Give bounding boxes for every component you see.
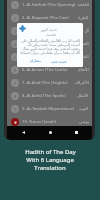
- staticText: الأنعام: [78, 67, 89, 72]
- staticText: الأنفال: [77, 93, 89, 98]
- staticText: الحديث: [46, 33, 56, 37]
- staticText: 10. Yunus (Jonah): [22, 119, 57, 125]
- staticText: المائدة: [77, 54, 89, 59]
- staticText: الفاتحة: [77, 2, 89, 7]
- staticText: البقرة: [78, 15, 89, 20]
- staticText: الأعراف: [75, 80, 89, 85]
- staticText: Hadith of The Day: [25, 148, 76, 156]
- staticText: 9. At-Tawbah (Repentance): [22, 106, 75, 112]
- button[interactable]: 4: [7, 37, 92, 50]
- staticText: حديث جديد: [51, 59, 67, 64]
- staticText: 6: [14, 68, 17, 73]
- staticText: Translation: [34, 164, 66, 172]
- button[interactable]: 7: [7, 76, 92, 89]
- staticText: مشاركة: [30, 59, 41, 63]
- staticText: 1: [14, 3, 17, 8]
- button[interactable]: Recent apps: [66, 126, 86, 140]
- staticText: حديث اليوم: [41, 27, 57, 32]
- button[interactable]: Back: [13, 126, 33, 140]
- staticText: 3: [14, 29, 17, 34]
- staticText: 5. Al-Ma'idah (The Table): [22, 54, 70, 60]
- button[interactable]: Home: [40, 126, 60, 140]
- staticText: 4: [14, 42, 17, 47]
- staticText: الحمد لله رب العالمين والصلاة والسلام عل…: [20, 38, 80, 54]
- button[interactable]: 5: [7, 50, 92, 63]
- staticText: With 6 Language: [26, 156, 74, 164]
- button[interactable]: 9: [7, 102, 92, 115]
- staticText: 4. An-Nisa (The Women): [22, 41, 70, 47]
- button[interactable]: 10. Yunus (Jonah): [7, 115, 92, 128]
- staticText: 6. Al-An'am (The Cattle): [22, 67, 68, 73]
- button[interactable]: 8: [7, 89, 92, 102]
- button[interactable]: مشاركة: [29, 58, 42, 64]
- staticText: 7. Al-A'raf (The Heights): [22, 80, 68, 86]
- staticText: آل عمران: [72, 28, 89, 34]
- staticText: 3. Aal-i-Imraan (Family): [22, 28, 68, 34]
- staticText: النساء: [78, 41, 89, 46]
- staticText: 2. Al-Baqarah (The Cow): [22, 15, 69, 21]
- button[interactable]: حديث جديد: [50, 58, 68, 65]
- staticText: يونس: [79, 119, 89, 124]
- staticText: التوبة: [79, 106, 89, 111]
- button[interactable]: 2: [7, 11, 92, 24]
- staticText: 5: [14, 55, 17, 60]
- button[interactable]: 3: [7, 24, 92, 37]
- button[interactable]: 1: [7, 0, 92, 11]
- staticText: 1. Al-Fatihah (The Opening): [22, 2, 76, 8]
- staticText: 8. Al-Anfal (The Spoils): [22, 93, 66, 99]
- button[interactable]: 6: [7, 63, 92, 76]
- staticText: 8: [14, 94, 17, 99]
- other: App icon: [19, 25, 26, 32]
- staticText: 7: [14, 81, 17, 86]
- staticText: 9: [14, 107, 17, 112]
- staticText: 2: [14, 16, 17, 21]
